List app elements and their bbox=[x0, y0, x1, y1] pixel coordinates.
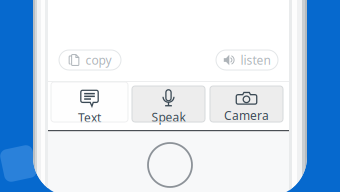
staticText: copy bbox=[85, 52, 111, 68]
button[interactable]: copy bbox=[59, 50, 121, 70]
staticText: Speak bbox=[151, 109, 185, 125]
staticText: Text bbox=[78, 110, 101, 125]
staticText: listen bbox=[241, 52, 271, 68]
button[interactable]: listen bbox=[216, 50, 278, 70]
button[interactable]: Camera bbox=[210, 86, 283, 122]
button[interactable]: Speak bbox=[132, 86, 205, 122]
button[interactable]: Text bbox=[51, 82, 128, 122]
staticText: Camera bbox=[224, 107, 269, 123]
